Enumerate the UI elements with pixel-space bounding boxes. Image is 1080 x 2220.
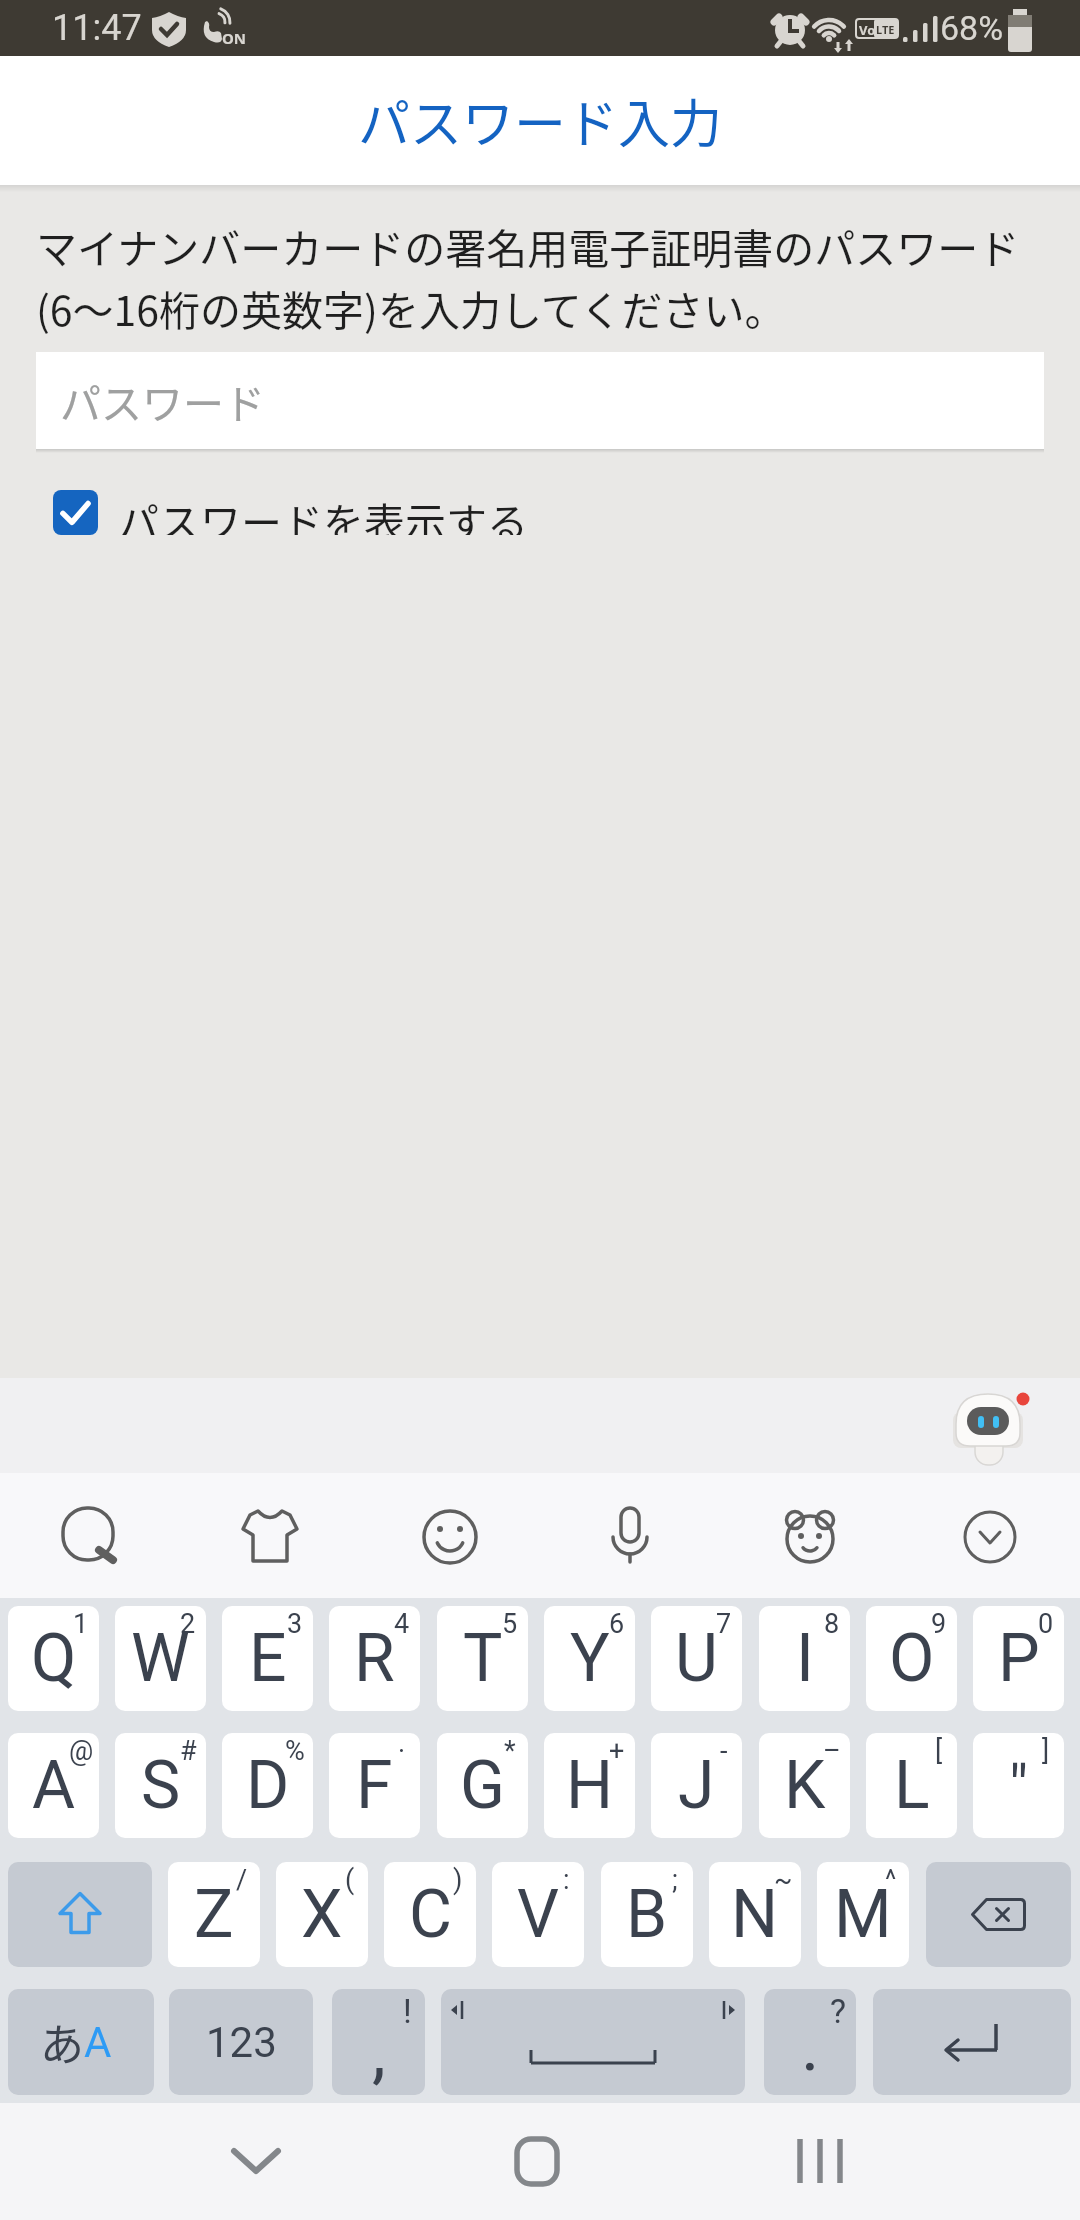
button[interactable]: L bbox=[866, 1733, 957, 1838]
staticText: J bbox=[678, 1747, 715, 1824]
staticText: 0 bbox=[1038, 1608, 1054, 1640]
staticText: 8 bbox=[824, 1608, 840, 1640]
staticText: X bbox=[301, 1876, 343, 1953]
button[interactable]: あ bbox=[8, 1989, 154, 2095]
staticText: LTE bbox=[876, 22, 895, 37]
staticText: ) bbox=[453, 1864, 463, 1896]
staticText: # bbox=[180, 1735, 197, 1767]
staticText: K bbox=[784, 1747, 826, 1824]
staticText: : bbox=[563, 1864, 570, 1896]
staticText: M bbox=[834, 1876, 892, 1953]
staticText: 11:47 bbox=[52, 7, 142, 49]
button[interactable]: O bbox=[866, 1606, 957, 1711]
button[interactable] bbox=[477, 2121, 597, 2201]
button[interactable] bbox=[196, 2121, 316, 2201]
button[interactable] bbox=[926, 1862, 1071, 1967]
staticText: ! bbox=[403, 1991, 412, 2027]
staticText: % bbox=[285, 1735, 305, 1767]
staticText: G bbox=[460, 1747, 505, 1824]
button[interactable]: F bbox=[329, 1733, 420, 1838]
staticText: ^ bbox=[885, 1864, 897, 1896]
button[interactable]: H bbox=[544, 1733, 635, 1838]
button[interactable]: Z bbox=[168, 1862, 260, 1967]
button[interactable]: M bbox=[817, 1862, 909, 1967]
staticText: パスワード bbox=[60, 371, 265, 430]
button[interactable] bbox=[775, 1502, 845, 1572]
staticText: パスワード入力 bbox=[358, 83, 723, 158]
staticText: - bbox=[720, 1735, 728, 1767]
staticText: 2 bbox=[180, 1608, 196, 1640]
button[interactable]: A bbox=[8, 1733, 99, 1838]
button[interactable]: E bbox=[222, 1606, 313, 1711]
staticText: U bbox=[675, 1620, 718, 1697]
button[interactable]: P bbox=[973, 1606, 1064, 1711]
button[interactable]: N bbox=[709, 1862, 801, 1967]
button[interactable]: S bbox=[115, 1733, 206, 1838]
button[interactable] bbox=[873, 1989, 1071, 2095]
staticText: . bbox=[801, 2005, 820, 2087]
button[interactable]: B bbox=[601, 1862, 693, 1967]
staticText: P bbox=[998, 1620, 1040, 1697]
button[interactable]: " bbox=[973, 1733, 1064, 1838]
staticText: 68% bbox=[940, 8, 1004, 48]
button[interactable]: C bbox=[384, 1862, 476, 1967]
button[interactable]: G bbox=[437, 1733, 528, 1838]
staticText: I bbox=[796, 1620, 814, 1697]
button[interactable]: Q bbox=[8, 1606, 99, 1711]
button[interactable] bbox=[955, 1502, 1025, 1572]
staticText: · bbox=[398, 1735, 406, 1767]
staticText: " bbox=[1009, 1751, 1029, 1821]
button[interactable]: パスワード bbox=[36, 352, 1044, 449]
button[interactable]: U bbox=[651, 1606, 742, 1711]
staticText: Vo bbox=[859, 21, 876, 39]
staticText: L bbox=[894, 1747, 930, 1824]
button[interactable]: T bbox=[437, 1606, 528, 1711]
staticText: V bbox=[517, 1876, 560, 1953]
staticText: F bbox=[356, 1747, 393, 1824]
button[interactable]: W bbox=[115, 1606, 206, 1711]
button[interactable] bbox=[952, 1386, 1036, 1470]
button[interactable]: R bbox=[329, 1606, 420, 1711]
button[interactable]: I bbox=[759, 1606, 850, 1711]
button[interactable]: 123 bbox=[169, 1989, 313, 2095]
staticText: Q bbox=[31, 1620, 77, 1697]
staticText: パスワードを表示する bbox=[118, 490, 528, 535]
staticText: ON bbox=[222, 28, 247, 48]
staticText: ( bbox=[345, 1864, 355, 1896]
button[interactable]: Y bbox=[544, 1606, 635, 1711]
button[interactable] bbox=[415, 1502, 485, 1572]
button[interactable]: K bbox=[759, 1733, 850, 1838]
button[interactable]: , bbox=[332, 1989, 425, 2095]
button[interactable] bbox=[53, 490, 98, 535]
button[interactable]: . bbox=[764, 1989, 856, 2095]
staticText: ; bbox=[672, 1864, 678, 1896]
staticText: B bbox=[626, 1876, 668, 1953]
staticText: H bbox=[566, 1747, 614, 1824]
staticText: D bbox=[246, 1747, 290, 1824]
staticText: 6 bbox=[609, 1608, 625, 1640]
staticText: – bbox=[823, 1735, 841, 1767]
button[interactable] bbox=[235, 1502, 305, 1572]
button[interactable]: J bbox=[651, 1733, 742, 1838]
button[interactable] bbox=[8, 1862, 152, 1967]
staticText: + bbox=[609, 1735, 625, 1767]
staticText: S bbox=[141, 1747, 181, 1824]
staticText: 123 bbox=[206, 2018, 277, 2067]
staticText: * bbox=[504, 1735, 516, 1767]
button[interactable] bbox=[55, 1502, 125, 1572]
button[interactable] bbox=[760, 2121, 880, 2201]
staticText: R bbox=[354, 1620, 395, 1697]
button[interactable]: D bbox=[222, 1733, 313, 1838]
staticText: あ bbox=[40, 2010, 84, 2074]
staticText: ? bbox=[830, 1991, 847, 2027]
button[interactable]: V bbox=[492, 1862, 584, 1967]
staticText: T bbox=[463, 1620, 503, 1697]
button[interactable]: X bbox=[276, 1862, 368, 1967]
staticText: O bbox=[889, 1620, 935, 1697]
staticText: ~ bbox=[774, 1864, 793, 1896]
staticText: / bbox=[236, 1864, 248, 1896]
staticText: 3 bbox=[287, 1608, 303, 1640]
staticText: A bbox=[32, 1747, 76, 1824]
button[interactable] bbox=[595, 1502, 665, 1572]
button[interactable] bbox=[441, 1989, 745, 2095]
